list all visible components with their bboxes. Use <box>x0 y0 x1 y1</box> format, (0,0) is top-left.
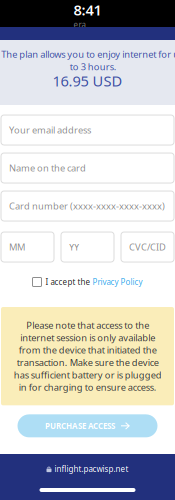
staticText: Your email address <box>9 124 91 136</box>
staticText: The plan allows you to enjoy internet fo… <box>1 48 175 73</box>
button[interactable]: Your email address <box>1 115 174 145</box>
staticText: inflight.pacwisp.net <box>54 464 128 474</box>
staticText: I accept the <box>41 277 92 287</box>
staticText: YY <box>69 241 79 253</box>
staticText: Please note that access to the internet … <box>13 319 161 393</box>
staticText: 8:41 <box>73 0 101 19</box>
button[interactable]: CVC/CID <box>121 232 174 262</box>
button[interactable]: MM <box>1 232 54 262</box>
button[interactable]: Name on the card <box>1 153 174 183</box>
staticText: Card number (xxxx-xxxx-xxxx-xxxx) <box>9 200 165 212</box>
button[interactable]: inflight.pacwisp.net <box>0 454 175 484</box>
button[interactable]: I accept the <box>1 276 174 288</box>
staticText: Name on the card <box>9 162 86 174</box>
staticText: 16.95 USD <box>52 71 122 90</box>
button[interactable]: YY <box>61 232 114 262</box>
staticText: PURCHASE ACCESS <box>45 420 115 431</box>
staticText: CVC/CID <box>129 241 166 253</box>
button[interactable]: Card number (xxxx-xxxx-xxxx-xxxx) <box>1 191 174 221</box>
staticText: Privacy Policy <box>92 277 142 287</box>
staticText: era <box>73 19 85 30</box>
button[interactable]: PURCHASE ACCESS <box>17 414 157 437</box>
staticText: MM <box>9 241 25 253</box>
